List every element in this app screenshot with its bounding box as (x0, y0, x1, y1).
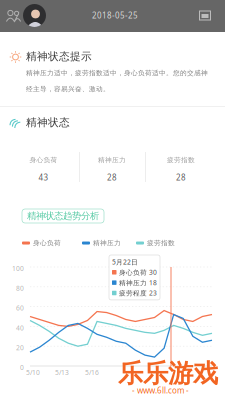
staticText: 身心负荷 (29, 156, 57, 164)
staticText: 5/10 (26, 368, 40, 377)
staticText: 精神压力 (98, 156, 126, 164)
staticText: 5/16 (85, 368, 99, 377)
staticText: - www.6ll.com - (132, 385, 189, 396)
staticText: 100 (12, 264, 24, 273)
staticText: 精神状态趋势分析 (27, 210, 99, 222)
staticText: 疲劳程度 23 (119, 289, 157, 297)
staticText: 5月22日 (112, 257, 138, 266)
button[interactable]: Friends (5, 8, 22, 25)
staticText: 43 (38, 172, 48, 183)
staticText: 28 (107, 172, 117, 183)
button[interactable]: Calendar (198, 8, 212, 22)
staticText: 疲劳指数 (167, 156, 195, 164)
staticText: 精神压力 18 (119, 278, 157, 287)
staticText: 60 (16, 304, 24, 312)
staticText: 精神压力 (93, 239, 121, 247)
staticText: 精神压力适中，疲劳指数适中，身心负荷适中。您的交感神 (26, 69, 208, 77)
staticText: 40 (16, 323, 24, 332)
staticText: 5/13 (55, 368, 69, 377)
staticText: 精神状态 (26, 116, 70, 129)
staticText: 精神状态提示 (26, 50, 92, 63)
staticText: 0 (20, 363, 24, 372)
staticText: 20 (16, 343, 24, 352)
button[interactable]: 精神状态趋势分析 (22, 209, 104, 223)
staticText: 80 (16, 284, 24, 293)
button[interactable]: Profile (23, 4, 46, 27)
staticText: 身心负荷 30 (119, 268, 157, 277)
staticText: 乐乐游戏 (118, 358, 218, 389)
staticText: 经主导，容易兴奋、激动。 (26, 85, 110, 93)
staticText: 疲劳指数 (147, 239, 175, 247)
staticText: 28 (176, 172, 186, 183)
staticText: 2018-05-25 (92, 10, 138, 21)
staticText: 身心负荷 (33, 239, 61, 247)
